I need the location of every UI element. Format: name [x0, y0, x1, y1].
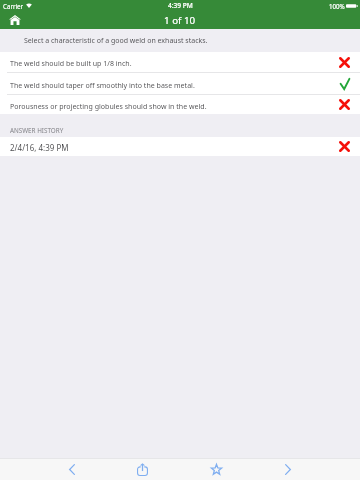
button[interactable]: The weld should taper off smoothly into …: [0, 73, 360, 94]
staticText: 100%: [329, 2, 345, 10]
button[interactable]: Share: [128, 459, 156, 480]
staticText: 1 of 10: [164, 14, 196, 27]
button[interactable]: 2/4/16, 4:39 PM: [0, 137, 360, 156]
staticText: Porousness or projecting globules should…: [10, 101, 207, 111]
button[interactable]: Previous: [58, 459, 86, 480]
button[interactable]: The weld should be built up 1/8 inch.: [0, 52, 360, 72]
staticText: Select a characteristic of a good weld o…: [24, 36, 208, 46]
staticText: The weld should taper off smoothly into …: [10, 80, 195, 90]
staticText: 4:39 PM: [168, 1, 193, 10]
staticText: Carrier: [3, 2, 24, 10]
staticText: The weld should be built up 1/8 inch.: [10, 58, 132, 68]
staticText: ANSWER HISTORY: [10, 126, 64, 135]
staticText: 2/4/16, 4:39 PM: [10, 142, 69, 153]
button[interactable]: Porousness or projecting globules should…: [0, 95, 360, 114]
button[interactable]: Bookmark: [202, 459, 230, 480]
button[interactable]: Next: [274, 459, 302, 480]
button[interactable]: Home: [5, 11, 25, 29]
